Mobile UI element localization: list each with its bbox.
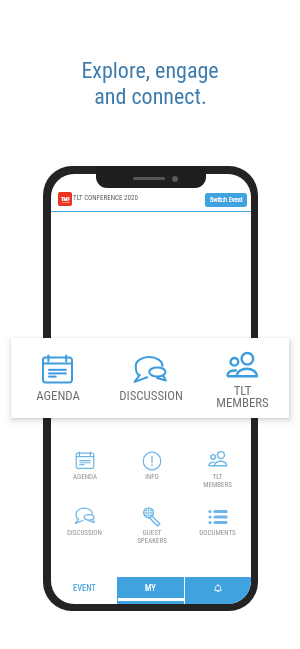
staticText: AGENDA xyxy=(36,388,80,403)
button[interactable]: DISCUSSION xyxy=(51,507,118,537)
button[interactable]: DOCUMENTS xyxy=(184,507,251,537)
staticText: TMF xyxy=(61,196,70,202)
button[interactable]: Notifications xyxy=(184,577,251,604)
staticText: DOCUMENTS xyxy=(199,529,236,537)
staticText: and connect. xyxy=(94,84,207,110)
button[interactable]: EVENT xyxy=(51,577,117,604)
staticText: AGENDA xyxy=(73,473,97,481)
button[interactable]: Switch Event xyxy=(205,193,247,207)
button[interactable]: MY xyxy=(117,577,184,604)
button[interactable]: TLT MEMBERS xyxy=(184,451,251,489)
staticText: GUEST SPEAKERS xyxy=(137,529,167,545)
button[interactable]: INFO xyxy=(118,451,185,481)
staticText: MY xyxy=(145,583,156,593)
staticText: TLT MEMBERS xyxy=(216,383,269,410)
button[interactable]: TLT MEMBERS xyxy=(196,347,289,410)
button[interactable]: AGENDA xyxy=(51,451,118,481)
staticText: Explore, engage xyxy=(81,58,219,84)
button[interactable]: DISCUSSION xyxy=(104,352,197,403)
button[interactable]: GUEST SPEAKERS xyxy=(118,507,185,545)
staticText: TLT MEMBERS xyxy=(203,473,232,489)
button[interactable]: AGENDA xyxy=(11,352,104,403)
staticText: Switch Event xyxy=(210,196,243,204)
staticText: DISCUSSION xyxy=(119,388,183,403)
staticText: DISCUSSION xyxy=(67,529,102,537)
button[interactable]: Event logo xyxy=(58,192,72,206)
staticText: TLT CONFERENCE 2020 xyxy=(73,194,138,202)
staticText: INFO xyxy=(145,473,159,481)
staticText: EVENT xyxy=(73,583,96,593)
